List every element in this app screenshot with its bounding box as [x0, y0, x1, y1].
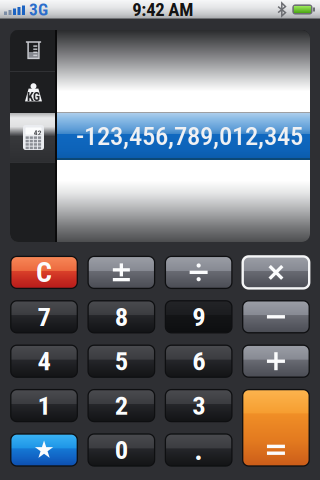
- button[interactable]: [11, 434, 77, 466]
- staticText: 6: [192, 346, 205, 377]
- button[interactable]: 9: [165, 301, 232, 333]
- button[interactable]: 7: [11, 301, 77, 333]
- staticText: 4: [38, 346, 51, 377]
- staticText: 9: [192, 301, 205, 332]
- button[interactable]: 0: [88, 434, 155, 466]
- staticText: 7: [38, 301, 51, 332]
- button[interactable]: .: [165, 434, 232, 466]
- button[interactable]: 2: [88, 390, 155, 422]
- staticText: 0: [115, 434, 128, 466]
- button[interactable]: 8: [88, 301, 155, 333]
- button[interactable]: Calculator: [10, 113, 57, 162]
- button[interactable]: [165, 256, 232, 288]
- button[interactable]: [243, 390, 309, 466]
- staticText: 3G: [29, 0, 48, 20]
- button[interactable]: 1: [11, 390, 77, 422]
- staticText: 2: [115, 390, 128, 421]
- staticText: 8: [115, 301, 128, 332]
- button[interactable]: [88, 256, 155, 288]
- button[interactable]: C: [11, 256, 77, 288]
- staticText: 9:42 AM: [132, 0, 193, 20]
- staticText: 1: [37, 390, 50, 421]
- button[interactable]: [243, 301, 309, 333]
- staticText: 5: [115, 346, 128, 377]
- button[interactable]: [243, 256, 309, 288]
- button[interactable]: Volume converter: [10, 30, 57, 71]
- staticText: C: [36, 256, 52, 289]
- button[interactable]: 4: [11, 345, 77, 377]
- button[interactable]: 3: [165, 390, 232, 422]
- staticText: .: [194, 433, 203, 467]
- button[interactable]: Weight converter: [10, 72, 57, 113]
- staticText: 3: [192, 390, 205, 421]
- staticText: 42: [33, 128, 41, 137]
- button[interactable]: [243, 345, 309, 377]
- button[interactable]: 5: [88, 345, 155, 377]
- staticText: -123,456,789,012,345: [76, 120, 303, 152]
- staticText: KG: [27, 90, 40, 104]
- button[interactable]: 6: [165, 345, 232, 377]
